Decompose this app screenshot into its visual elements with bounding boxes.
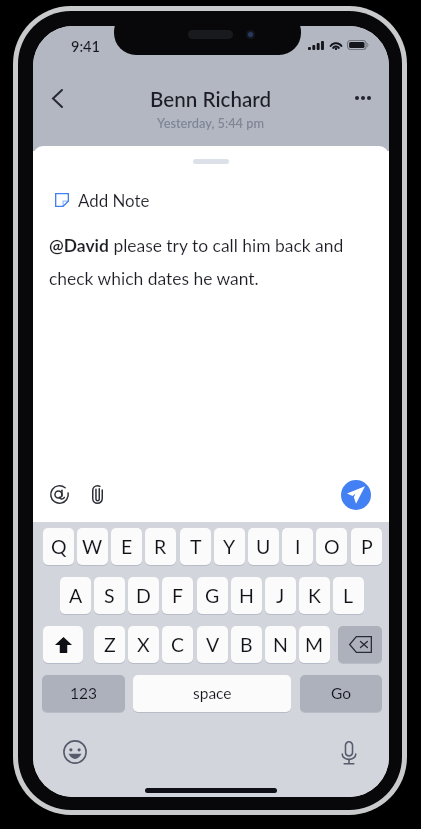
staticText: Benn Richard xyxy=(150,87,272,112)
staticText: E xyxy=(121,535,133,558)
button[interactable]: S xyxy=(94,577,125,614)
button[interactable]: C xyxy=(162,626,193,663)
button[interactable]: Send xyxy=(341,480,371,510)
button[interactable]: H xyxy=(231,577,262,614)
staticText: Q xyxy=(51,535,67,558)
button[interactable]: L xyxy=(333,577,364,614)
staticText: space xyxy=(193,684,232,703)
button[interactable]: Shift xyxy=(43,626,83,663)
staticText: H xyxy=(239,584,254,607)
staticText: A xyxy=(69,584,83,607)
button[interactable]: T xyxy=(180,528,211,565)
button[interactable]: G xyxy=(197,577,228,614)
button[interactable]: D xyxy=(128,577,159,614)
button[interactable]: I xyxy=(282,528,313,565)
button[interactable]: W xyxy=(77,528,108,565)
button[interactable]: Attach file xyxy=(78,475,116,513)
button[interactable]: More options xyxy=(341,76,385,120)
button[interactable]: Back xyxy=(35,76,79,120)
staticText: T xyxy=(190,535,202,558)
button[interactable]: Q xyxy=(43,528,74,565)
button[interactable]: Backspace xyxy=(338,626,382,663)
staticText: O xyxy=(324,535,340,558)
staticText: Y xyxy=(223,535,236,558)
staticText: I xyxy=(295,535,301,558)
staticText: Go xyxy=(331,684,352,703)
staticText: U xyxy=(256,535,271,558)
staticText: X xyxy=(137,633,150,656)
button[interactable]: Y xyxy=(214,528,245,565)
staticText: G xyxy=(205,584,220,607)
staticText: J xyxy=(276,584,285,607)
button[interactable]: Add Note xyxy=(55,190,150,210)
button[interactable]: X xyxy=(128,626,159,663)
button[interactable]: R xyxy=(145,528,176,565)
button[interactable]: N xyxy=(265,626,296,663)
button[interactable]: Z xyxy=(94,626,125,663)
staticText: B xyxy=(240,633,253,656)
staticText: D xyxy=(136,584,151,607)
staticText: P xyxy=(361,535,373,558)
button[interactable]: O xyxy=(316,528,347,565)
staticText: R xyxy=(154,535,167,558)
button[interactable]: P xyxy=(351,528,382,565)
staticText: 123 xyxy=(70,684,97,703)
button[interactable]: J xyxy=(265,577,296,614)
button[interactable]: E xyxy=(111,528,142,565)
button[interactable]: Mention xyxy=(40,475,78,513)
button[interactable]: Voice input xyxy=(332,736,366,770)
button[interactable]: space xyxy=(133,675,291,712)
button[interactable]: V xyxy=(197,626,228,663)
staticText: M xyxy=(305,633,324,656)
staticText: C xyxy=(171,633,185,656)
staticText: F xyxy=(172,584,184,607)
button[interactable]: M xyxy=(299,626,330,663)
staticText: V xyxy=(206,633,220,656)
staticText: S xyxy=(104,584,115,607)
staticText: 9:41 xyxy=(71,38,100,55)
staticText: Add Note xyxy=(78,190,150,210)
staticText: W xyxy=(82,535,103,558)
button[interactable]: 123 xyxy=(42,675,125,712)
staticText: Z xyxy=(104,633,116,656)
button[interactable]: F xyxy=(162,577,193,614)
button[interactable]: A xyxy=(60,577,91,614)
button[interactable]: Go xyxy=(300,675,382,712)
button[interactable]: U xyxy=(248,528,279,565)
staticText: K xyxy=(308,584,321,607)
staticText: N xyxy=(273,633,288,656)
staticText: L xyxy=(343,584,354,607)
button[interactable]: K xyxy=(299,577,330,614)
staticText: @David please try to call him back and c… xyxy=(49,235,354,289)
button[interactable]: Emoji xyxy=(58,735,92,769)
staticText: Yesterday, 5:44 pm xyxy=(157,115,265,130)
button[interactable]: B xyxy=(231,626,262,663)
